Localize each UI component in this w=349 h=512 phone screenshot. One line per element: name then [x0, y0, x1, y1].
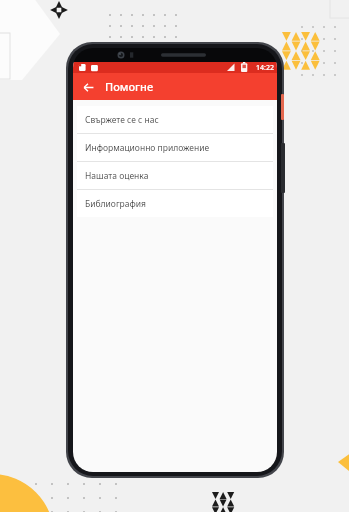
- staticText: Помогне: [105, 79, 154, 94]
- button[interactable]: Свържете се с нас: [77, 106, 273, 133]
- button[interactable]: Back: [78, 77, 98, 97]
- staticText: Нашата оценка: [85, 170, 149, 182]
- button[interactable]: Библиография: [77, 190, 273, 217]
- staticText: Свържете се с нас: [85, 114, 159, 126]
- staticText: Информационно приложение: [85, 142, 210, 154]
- staticText: 14:22: [256, 63, 274, 73]
- button[interactable]: Нашата оценка: [77, 162, 273, 189]
- staticText: Библиография: [85, 198, 146, 210]
- button[interactable]: Информационно приложение: [77, 134, 273, 161]
